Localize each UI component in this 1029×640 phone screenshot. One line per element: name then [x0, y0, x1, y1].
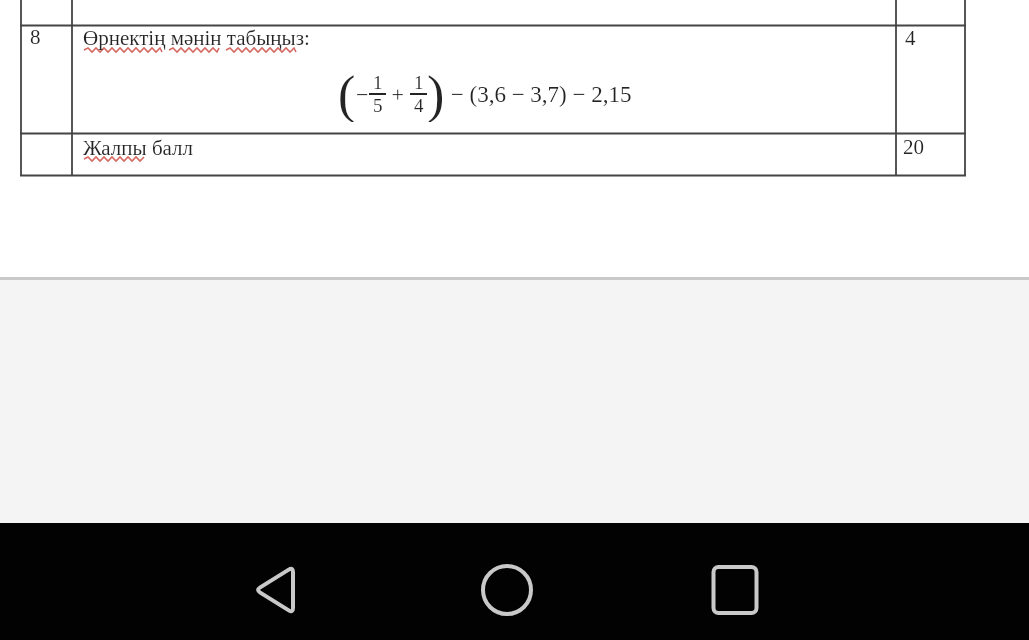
- staticText: +: [386, 82, 410, 106]
- staticText: 8: [30, 25, 41, 48]
- staticText: 5: [373, 95, 383, 116]
- staticText: −: [356, 82, 369, 106]
- staticText: − (3,6 − 3,7) − 2,15: [445, 82, 632, 107]
- staticText: (: [338, 66, 356, 122]
- staticText: ): [427, 66, 445, 122]
- staticText: 4: [414, 95, 424, 116]
- button[interactable]: [465, 548, 549, 632]
- staticText: Жалпы балл: [83, 136, 194, 159]
- staticText: 20: [903, 135, 924, 158]
- button[interactable]: [235, 548, 319, 632]
- staticText: 1: [373, 72, 383, 93]
- staticText: 1: [414, 72, 424, 93]
- staticText: Өрнектің мәнін табыңыз:: [83, 26, 310, 49]
- button[interactable]: [693, 548, 777, 632]
- staticText: 4: [905, 26, 916, 49]
